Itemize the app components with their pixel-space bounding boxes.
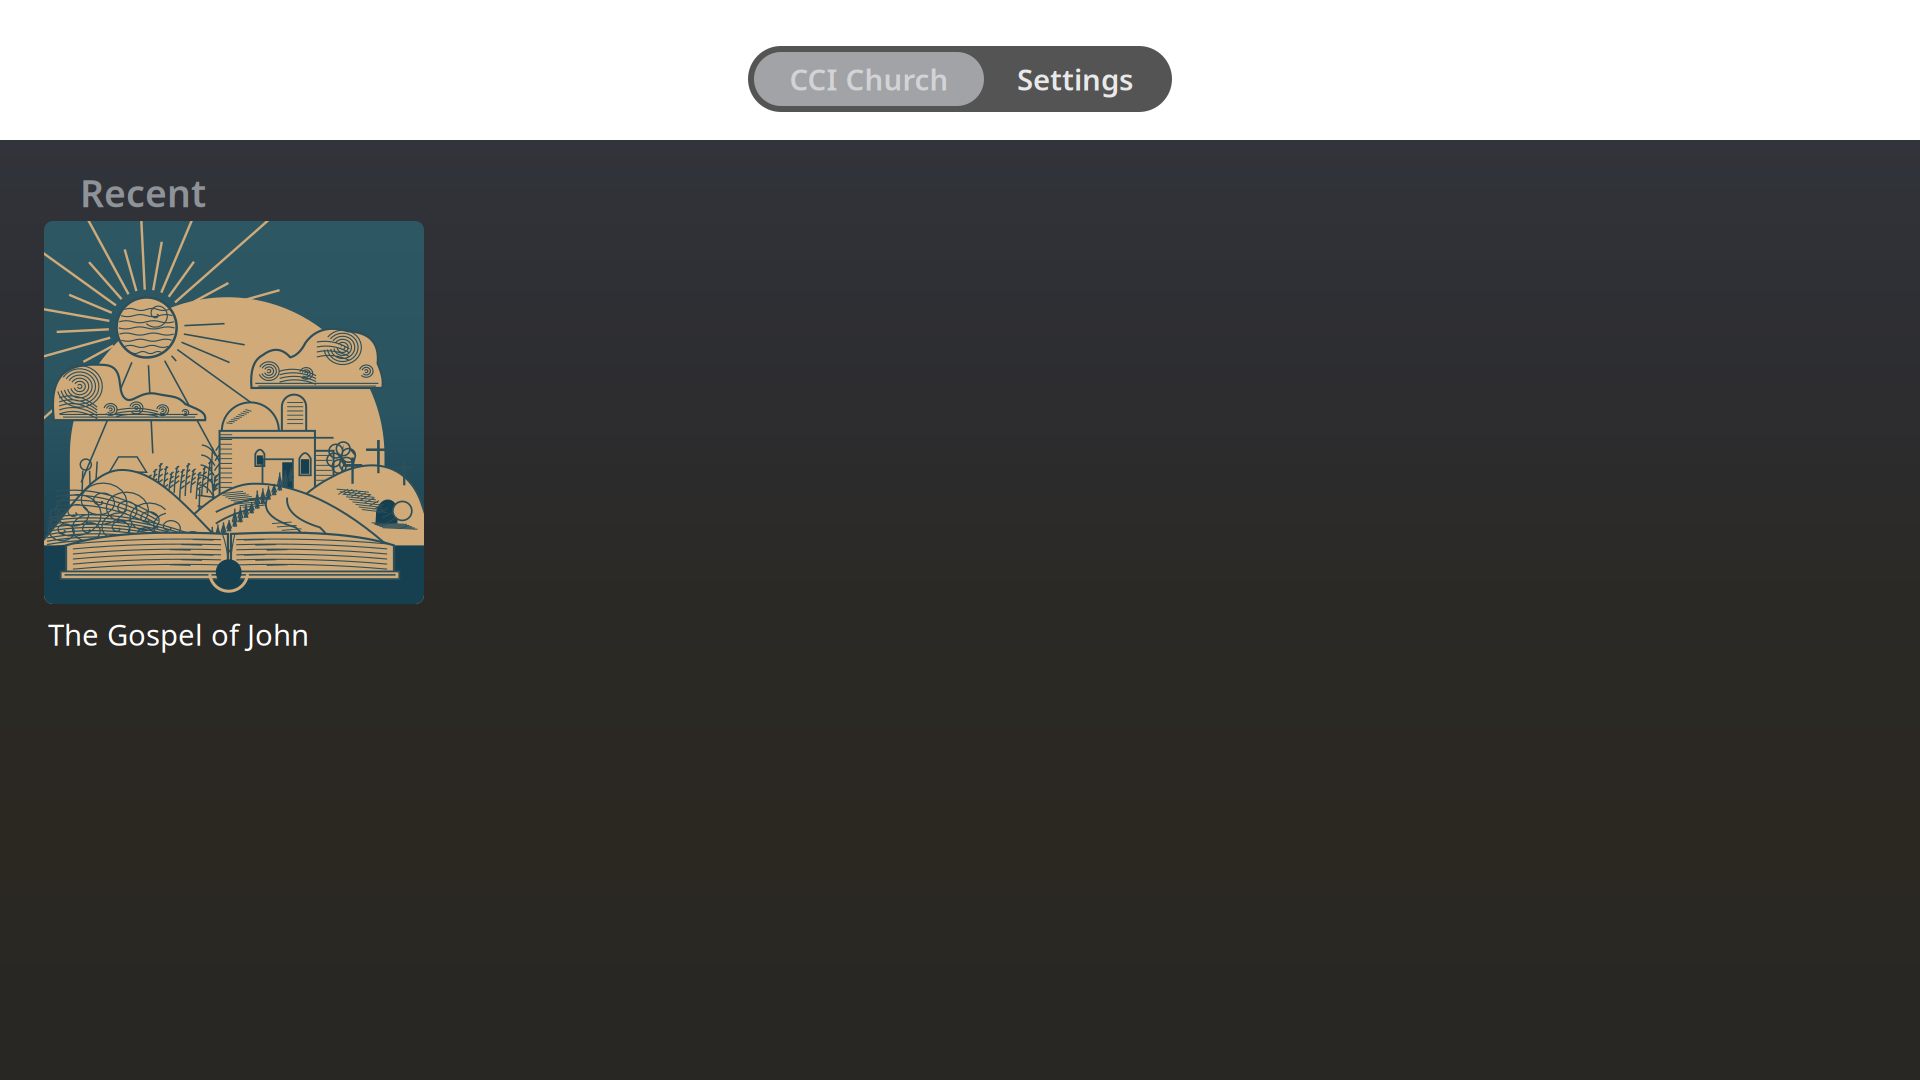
staticText: Settings xyxy=(1017,59,1133,98)
button[interactable]: Settings xyxy=(984,52,1166,106)
staticText: Recent xyxy=(80,168,206,218)
button[interactable]: CCI Church xyxy=(754,52,984,106)
staticText: CCI Church xyxy=(789,59,948,98)
button[interactable]: The Gospel of John xyxy=(44,221,424,654)
staticText: The Gospel of John xyxy=(48,615,309,654)
